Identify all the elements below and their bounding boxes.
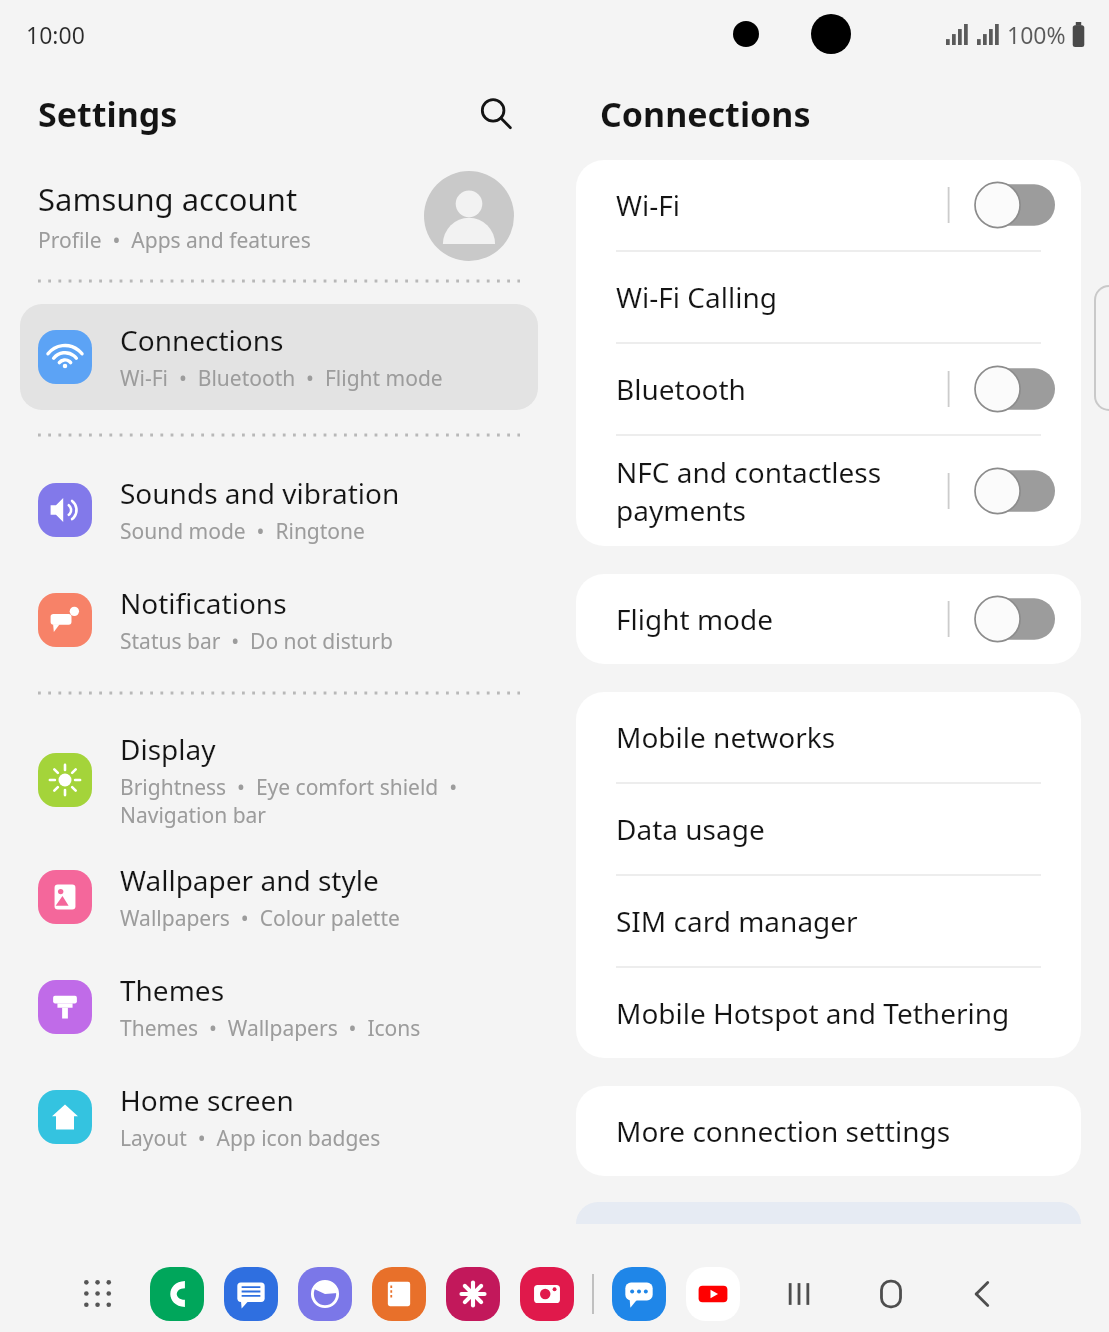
button[interactable]: Mobile networks	[576, 692, 1081, 782]
button[interactable]: NFC and contactless payments	[576, 436, 1081, 546]
staticText: Wi-Fi Calling	[616, 278, 1055, 316]
button[interactable]: browser	[298, 1267, 352, 1321]
button[interactable]: msg	[224, 1267, 278, 1321]
staticText: Layout • App icon badges	[120, 1124, 381, 1153]
button[interactable]: Sounds and vibration	[0, 468, 558, 552]
button[interactable]: NFC and contactless payments toggle	[975, 468, 1055, 514]
button[interactable]: Samsung account	[0, 160, 558, 272]
staticText: Connections	[600, 91, 811, 137]
staticText: Wi-Fi • Bluetooth • Flight mode	[120, 364, 443, 393]
button[interactable]: SIM card manager	[576, 876, 1081, 966]
staticText: Brightness • Eye comfort shield • Naviga…	[120, 773, 458, 829]
staticText: Mobile networks	[616, 718, 1055, 756]
staticText: Samsung account	[38, 178, 298, 220]
staticText: Connections	[120, 321, 284, 359]
button[interactable]: Flight mode toggle	[975, 596, 1055, 642]
button[interactable]: Wallpaper and style	[0, 855, 558, 939]
staticText: Themes	[120, 971, 225, 1009]
button[interactable]: Home screen	[0, 1075, 558, 1159]
staticText: Notifications	[120, 584, 287, 622]
staticText: Wallpaper and style	[120, 861, 379, 899]
staticText: Themes • Wallpapers • Icons	[120, 1014, 421, 1043]
button[interactable]: Back	[950, 1261, 1016, 1327]
button[interactable]: Apps	[72, 1268, 124, 1320]
staticText: Status bar • Do not disturb	[120, 627, 393, 656]
staticText: Wallpapers • Colour palette	[120, 904, 400, 933]
button[interactable]: Connections	[20, 304, 538, 410]
staticText: Data usage	[616, 810, 1055, 848]
staticText: Settings	[38, 91, 178, 137]
button[interactable]: Recents	[766, 1261, 832, 1327]
button[interactable]: yt	[686, 1267, 740, 1321]
staticText: Bluetooth	[616, 370, 943, 408]
button[interactable]: Data usage	[576, 784, 1081, 874]
staticText: Flight mode	[616, 600, 943, 638]
button[interactable]: Wi-Fi Calling	[576, 252, 1081, 342]
staticText: Mobile Hotspot and Tethering	[616, 994, 1055, 1032]
staticText: Home screen	[120, 1081, 294, 1119]
button[interactable]: Bluetooth	[576, 344, 1081, 434]
button[interactable]: Display	[0, 724, 558, 835]
button[interactable]: Bluetooth toggle	[975, 366, 1055, 412]
staticText: Wi-Fi	[616, 186, 943, 224]
button[interactable]: Home	[858, 1261, 924, 1327]
staticText: Sounds and vibration	[120, 474, 400, 512]
button[interactable]: store	[446, 1267, 500, 1321]
button[interactable]: Themes	[0, 965, 558, 1049]
button[interactable]: Search	[468, 86, 524, 142]
staticText: Sound mode • Ringtone	[120, 517, 365, 546]
button[interactable]: Wi-Fi	[576, 160, 1081, 250]
staticText: More connection settings	[616, 1112, 1055, 1150]
staticText: SIM card manager	[616, 902, 1055, 940]
button[interactable]: notes	[372, 1267, 426, 1321]
button[interactable]: Wi-Fi toggle	[975, 182, 1055, 228]
staticText: NFC and contactless payments	[616, 453, 943, 529]
button[interactable]: Mobile Hotspot and Tethering	[576, 968, 1081, 1058]
button[interactable]: More connection settings	[576, 1086, 1081, 1176]
button[interactable]: phone	[150, 1267, 204, 1321]
button[interactable]: camera	[520, 1267, 574, 1321]
staticText: 100%	[1007, 19, 1066, 50]
staticText: 10:00	[26, 19, 85, 50]
button[interactable]: Notifications	[0, 578, 558, 662]
button[interactable]: chat	[612, 1267, 666, 1321]
button[interactable]: Flight mode	[576, 574, 1081, 664]
staticText: Profile • Apps and features	[38, 226, 311, 255]
staticText: Display	[120, 730, 216, 768]
